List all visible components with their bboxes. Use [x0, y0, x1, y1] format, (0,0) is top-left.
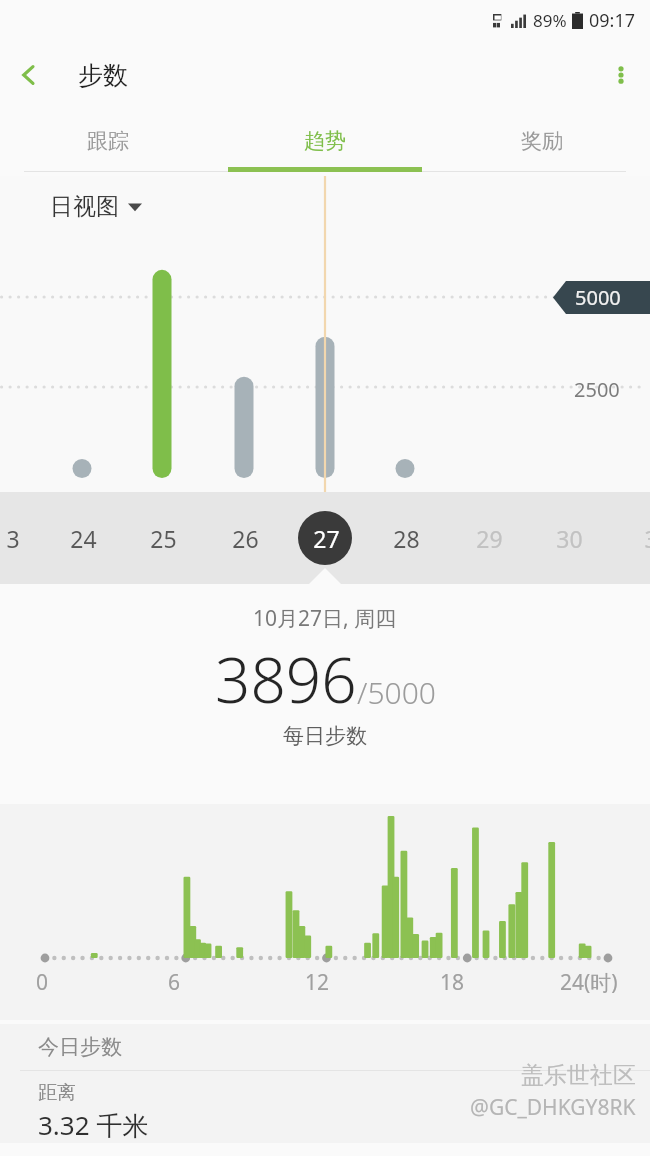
button[interactable]: 25 — [148, 492, 178, 584]
staticText: 步数 — [78, 60, 128, 91]
staticText: 奖励 — [521, 128, 563, 154]
button[interactable]: More options — [592, 46, 650, 104]
button[interactable]: 距离 — [0, 1071, 650, 1143]
staticText: 18 — [440, 968, 465, 997]
staticText: 今日步数 — [38, 1034, 122, 1060]
staticText: 3 — [6, 523, 20, 554]
button[interactable]: 3 — [0, 492, 28, 584]
button[interactable]: 28 — [391, 492, 421, 584]
button[interactable]: 趋势 — [216, 110, 433, 172]
staticText: 89% — [533, 9, 567, 32]
staticText: 趋势 — [304, 128, 346, 154]
staticText: 26 — [232, 523, 259, 554]
staticText: 3.32 千米 — [38, 1107, 149, 1143]
button[interactable]: 跟踪 — [0, 110, 216, 172]
staticText: 2500 — [574, 376, 620, 403]
staticText: 盖乐世社区 — [521, 1061, 636, 1090]
staticText: 6 — [168, 968, 181, 997]
staticText: 5000 — [575, 284, 621, 311]
staticText: 距离 — [38, 1081, 76, 1105]
staticText: 日视图 — [50, 192, 119, 221]
staticText: /5000 — [357, 672, 436, 713]
staticText: @GC_DHKGY8RK — [470, 1093, 636, 1122]
staticText: 每日步数 — [283, 723, 367, 749]
staticText: 10月27日, 周四 — [253, 604, 397, 633]
staticText: 28 — [393, 523, 420, 554]
button[interactable]: 29 — [474, 492, 504, 584]
staticText: 24(时) — [560, 968, 618, 997]
staticText: 3896 — [215, 637, 357, 721]
button[interactable]: 26 — [230, 492, 260, 584]
staticText: 29 — [476, 523, 503, 554]
staticText: 25 — [150, 523, 177, 554]
button[interactable]: 27 — [311, 492, 341, 584]
staticText: 09:17 — [589, 8, 636, 33]
button[interactable]: Back — [0, 46, 58, 104]
staticText: 3 — [644, 523, 650, 554]
button[interactable]: 日视图 — [44, 186, 148, 227]
button[interactable]: 今日步数 — [0, 1024, 650, 1070]
button[interactable]: 奖励 — [433, 110, 650, 172]
staticText: 跟踪 — [87, 128, 129, 154]
staticText: 24 — [70, 523, 97, 554]
staticText: 0 — [36, 968, 49, 997]
staticText: 30 — [556, 523, 583, 554]
staticText: 27 — [313, 523, 340, 554]
staticText: 12 — [305, 968, 330, 997]
button[interactable]: 24 — [68, 492, 98, 584]
button[interactable]: 30 — [554, 492, 584, 584]
button[interactable]: 3 — [636, 492, 650, 584]
